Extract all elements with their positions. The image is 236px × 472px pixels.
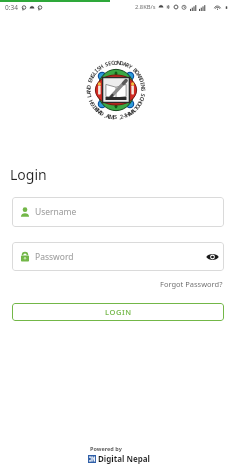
- button[interactable]: Show password: [204, 249, 220, 265]
- staticText: Login: [10, 165, 47, 184]
- staticText: Digital Nepal: [98, 453, 150, 464]
- staticText: 2.8KB/s: [135, 3, 156, 11]
- staticText: 0:34: [5, 3, 18, 12]
- button[interactable]: Password: [12, 242, 224, 271]
- staticText: Password: [35, 251, 74, 263]
- button[interactable]: LOGIN: [12, 303, 224, 321]
- button[interactable]: Username: [12, 197, 224, 227]
- staticText: Powered by: [90, 445, 122, 452]
- staticText: LOGIN: [105, 307, 132, 317]
- staticText: Username: [35, 206, 77, 218]
- button[interactable]: Forgot Password?: [158, 277, 225, 291]
